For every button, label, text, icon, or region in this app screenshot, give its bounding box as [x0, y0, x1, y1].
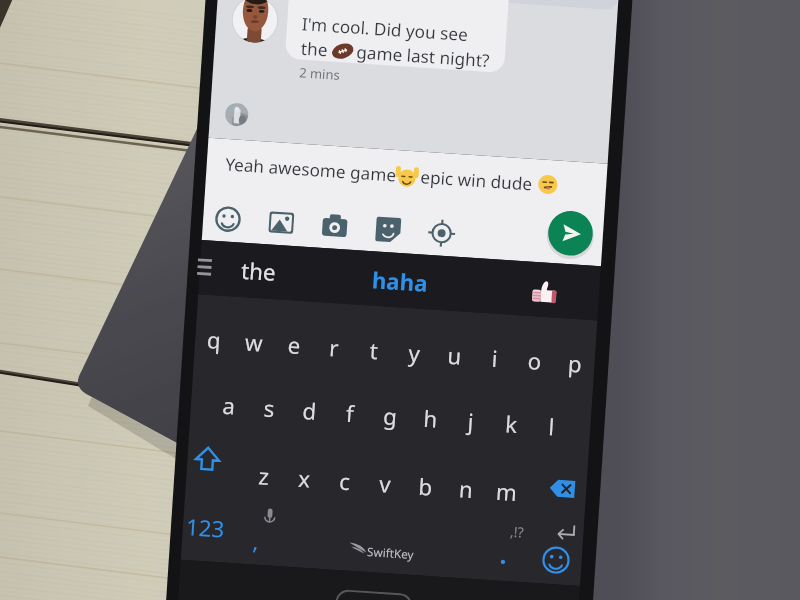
button[interactable] [0, 0, 800, 600]
